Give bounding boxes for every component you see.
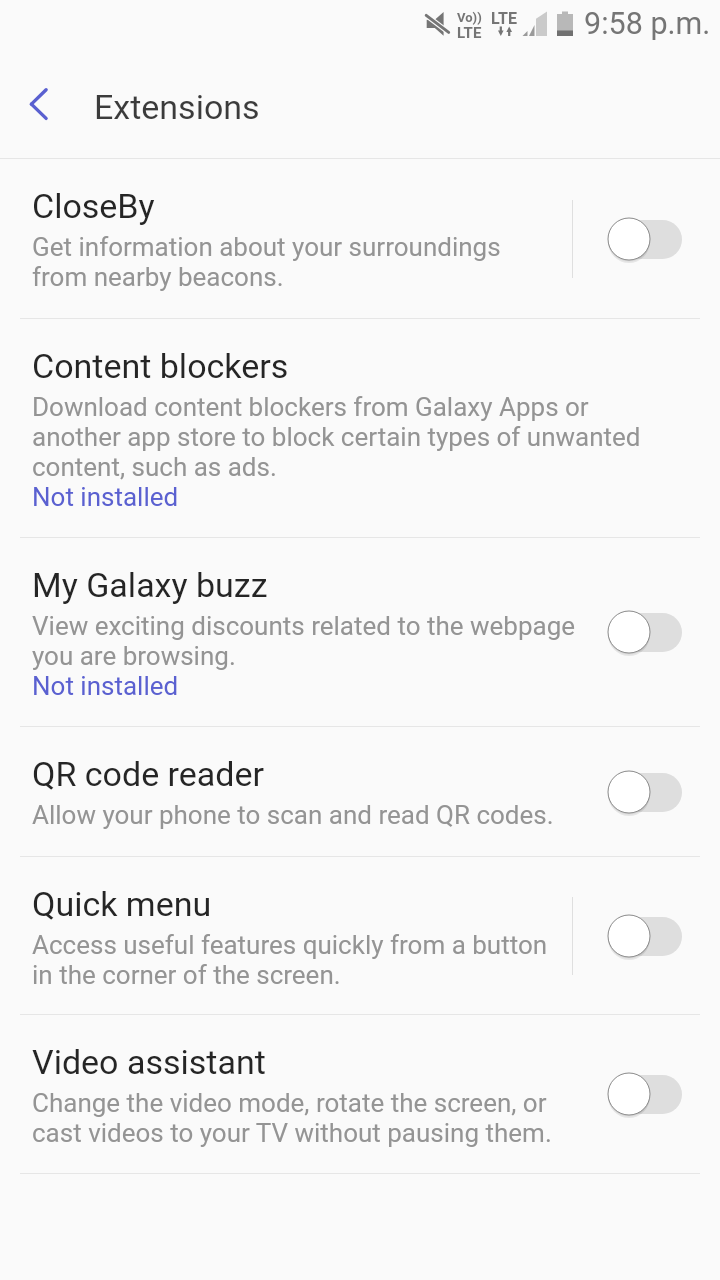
staticText: View exciting discounts related to the w… (32, 611, 576, 641)
staticText: 9:58 p.m. (584, 6, 711, 42)
staticText: Quick menu (32, 884, 212, 924)
button[interactable]: Toggle switch, off (607, 914, 682, 958)
button[interactable]: Toggle switch, off (607, 770, 682, 814)
staticText: My Galaxy buzz (32, 565, 268, 605)
staticText: LTE (491, 9, 517, 28)
staticText: Get information about your surroundings (32, 232, 501, 262)
staticText: Allow your phone to scan and read QR cod… (32, 800, 554, 830)
button[interactable]: My Galaxy buzz (0, 538, 720, 726)
staticText: another app store to block certain types… (32, 422, 641, 452)
button[interactable]: Video assistant (0, 1015, 720, 1173)
staticText: you are browsing. (32, 641, 236, 671)
staticText: Change the video mode, rotate the screen… (32, 1088, 547, 1118)
staticText: cast videos to your TV without pausing t… (32, 1118, 552, 1148)
staticText: CloseBy (32, 186, 155, 226)
button[interactable]: CloseBy (0, 159, 720, 318)
staticText: QR code reader (32, 754, 265, 794)
button[interactable]: Navigate up (0, 69, 76, 145)
staticText: Content blockers (32, 346, 289, 386)
staticText: Access useful features quickly from a bu… (32, 930, 548, 960)
staticText: Download content blockers from Galaxy Ap… (32, 392, 589, 422)
staticText: LTE (457, 24, 482, 42)
staticText: Video assistant (32, 1042, 266, 1082)
staticText: in the corner of the screen. (32, 960, 341, 990)
staticText: Not installed (32, 482, 179, 512)
button[interactable]: Quick menu (0, 857, 720, 1014)
staticText: Extensions (94, 87, 260, 127)
staticText: content, such as ads. (32, 452, 277, 482)
staticText: Vo)) (457, 10, 482, 25)
staticText: from nearby beacons. (32, 262, 284, 292)
button[interactable]: Content blockers (0, 319, 720, 537)
button[interactable]: QR code reader (0, 727, 720, 856)
staticText: Not installed (32, 671, 179, 701)
button[interactable]: Toggle switch, off (607, 1072, 682, 1116)
button[interactable]: Toggle switch, off (607, 217, 682, 261)
button[interactable]: Toggle switch, off (607, 610, 682, 654)
